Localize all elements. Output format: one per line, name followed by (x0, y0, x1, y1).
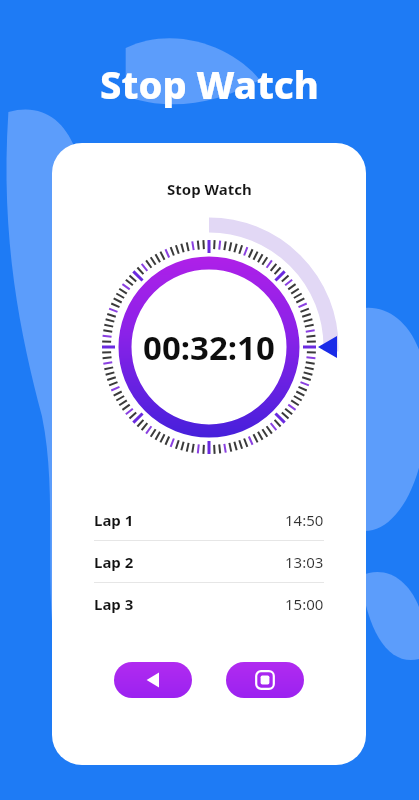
staticText: 15:00 (285, 594, 324, 614)
button[interactable]: Lap 3 (94, 583, 324, 624)
staticText: 00:32:10 (143, 325, 275, 370)
staticText: Lap 3 (94, 594, 134, 614)
button[interactable]: Stop (226, 662, 304, 698)
button[interactable]: Lap 1 (94, 499, 324, 540)
button[interactable]: Back (114, 662, 192, 698)
staticText: Lap 2 (94, 552, 134, 572)
staticText: Stop Watch (100, 58, 319, 110)
staticText: 14:50 (285, 510, 324, 530)
button[interactable]: Lap 2 (94, 541, 324, 582)
staticText: Stop Watch (167, 179, 252, 199)
staticText: 13:03 (285, 552, 324, 572)
staticText: Lap 1 (94, 510, 134, 530)
